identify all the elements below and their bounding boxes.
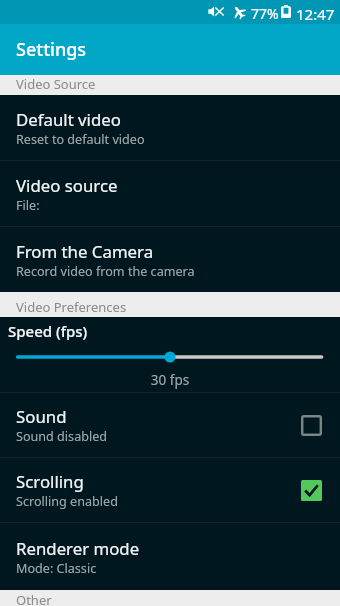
staticText: Reset to default video	[16, 131, 145, 148]
staticText: Scrolling enabled	[16, 493, 118, 510]
button[interactable]: Scrolling	[0, 458, 340, 522]
staticText: Scrolling	[16, 470, 84, 493]
button[interactable]: Settings	[0, 24, 340, 75]
staticText: 12:47	[296, 4, 335, 24]
staticText: Renderer mode	[16, 537, 140, 560]
staticText: Other	[16, 591, 52, 606]
staticText: File:	[16, 197, 40, 214]
staticText: Video Source	[16, 75, 96, 89]
staticText: From the Camera	[16, 240, 154, 263]
staticText: Sound	[16, 405, 67, 428]
staticText: Settings	[16, 37, 87, 62]
button[interactable]: Default video	[0, 95, 340, 160]
button[interactable]: Renderer mode	[0, 523, 340, 590]
staticText: Default video	[16, 108, 121, 131]
staticText: Mode: Classic	[16, 560, 97, 577]
button[interactable]: Enabled checkbox	[296, 475, 326, 505]
staticText: 30 fps	[0, 371, 340, 389]
staticText: Speed (fps)	[8, 321, 88, 341]
button[interactable]: Disabled checkbox	[296, 410, 326, 440]
staticText: 77%	[251, 4, 279, 23]
staticText: Sound disabled	[16, 428, 108, 445]
staticText: Video source	[16, 174, 118, 197]
button[interactable]: Speed (fps)	[0, 317, 340, 392]
staticText: Video Preferences	[16, 298, 127, 316]
staticText: Record video from the camera	[16, 263, 195, 280]
button[interactable]: Video source	[0, 161, 340, 226]
button[interactable]: Sound	[0, 393, 340, 457]
button[interactable]: From the Camera	[0, 227, 340, 292]
